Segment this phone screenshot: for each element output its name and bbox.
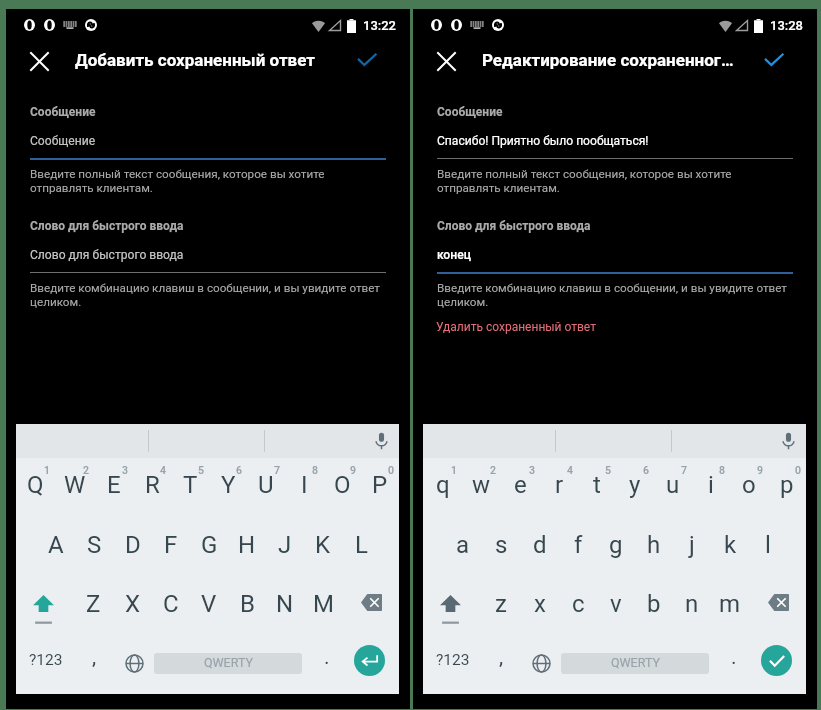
staticText: h — [647, 531, 661, 559]
button[interactable]: 8 — [692, 458, 730, 517]
button[interactable]: Enter — [753, 636, 799, 684]
button[interactable]: S — [75, 517, 114, 576]
button[interactable]: n — [673, 576, 711, 635]
button[interactable]: c — [559, 576, 597, 635]
button[interactable]: z — [481, 576, 520, 635]
button[interactable]: 0 — [768, 458, 806, 517]
button[interactable]: , — [74, 639, 114, 687]
button[interactable]: 6 — [209, 458, 247, 517]
button[interactable]: 8 — [285, 458, 323, 517]
staticText: Z — [86, 590, 101, 618]
staticText: 9 — [757, 464, 763, 476]
button[interactable]: 3 — [94, 458, 133, 517]
staticText: l — [765, 531, 771, 559]
button[interactable]: k — [711, 517, 749, 576]
button[interactable]: Close — [22, 44, 56, 78]
button[interactable]: f — [559, 517, 597, 576]
button[interactable]: Voice input — [773, 426, 803, 456]
button[interactable]: v — [597, 576, 635, 635]
button[interactable]: s — [482, 517, 521, 576]
staticText: w — [472, 471, 491, 499]
button[interactable]: Change language — [114, 639, 154, 687]
button[interactable]: 6 — [616, 458, 654, 517]
button[interactable]: . — [717, 639, 751, 687]
button[interactable]: 1 — [423, 458, 462, 517]
button[interactable]: x — [520, 576, 559, 635]
button[interactable]: ?123 — [425, 636, 481, 684]
button[interactable]: D — [114, 517, 152, 576]
button[interactable]: . — [310, 639, 344, 687]
button[interactable]: 9 — [730, 458, 768, 517]
staticText: Добавить сохраненный ответ — [75, 50, 350, 70]
button[interactable]: X — [113, 576, 152, 635]
button[interactable]: 7 — [654, 458, 692, 517]
button[interactable]: d — [521, 517, 559, 576]
button[interactable]: QWERTY — [146, 639, 310, 687]
staticText: X — [125, 590, 141, 618]
button[interactable]: 4 — [133, 458, 171, 517]
staticText: W — [64, 471, 86, 499]
button[interactable]: N — [266, 576, 304, 635]
button[interactable]: 0 — [361, 458, 399, 517]
button[interactable]: C — [152, 576, 190, 635]
button[interactable]: 7 — [247, 458, 285, 517]
button[interactable]: Shift — [16, 576, 74, 635]
staticText: 9 — [350, 464, 356, 476]
button[interactable]: ?123 — [18, 636, 74, 684]
button[interactable]: 5 — [578, 458, 616, 517]
button[interactable]: a — [443, 517, 482, 576]
button[interactable]: H — [228, 517, 266, 576]
button[interactable]: h — [635, 517, 673, 576]
button[interactable]: 3 — [501, 458, 540, 517]
button[interactable]: Удалить сохраненный ответ — [436, 320, 596, 334]
staticText: J — [278, 531, 292, 559]
button[interactable]: 2 — [462, 458, 501, 517]
staticText: F — [164, 531, 178, 559]
button[interactable]: J — [266, 517, 304, 576]
staticText: ?123 — [436, 651, 470, 669]
button[interactable]: Backspace — [342, 576, 399, 635]
button[interactable]: Z — [74, 576, 113, 635]
button[interactable]: A — [36, 517, 75, 576]
button[interactable]: 9 — [323, 458, 361, 517]
button[interactable]: l — [749, 517, 787, 576]
staticText: S — [87, 531, 102, 559]
button[interactable]: , — [481, 639, 521, 687]
button[interactable]: B — [228, 576, 266, 635]
button[interactable]: M — [304, 576, 342, 635]
button[interactable]: g — [597, 517, 635, 576]
button[interactable]: b — [635, 576, 673, 635]
staticText: 13:22 — [363, 18, 397, 33]
button[interactable]: Voice input — [366, 426, 396, 456]
staticText: q — [436, 471, 450, 499]
staticText: N — [276, 590, 294, 618]
staticText: M — [313, 590, 334, 618]
button[interactable]: K — [304, 517, 342, 576]
staticText: 0 — [795, 464, 801, 476]
button[interactable]: V — [190, 576, 228, 635]
button[interactable]: Backspace — [749, 576, 806, 635]
button[interactable]: j — [673, 517, 711, 576]
staticText: m — [719, 590, 741, 618]
button[interactable]: Change language — [521, 639, 561, 687]
button[interactable]: Save — [349, 41, 385, 77]
button[interactable]: 4 — [540, 458, 578, 517]
button[interactable]: F — [152, 517, 190, 576]
staticText: 1 — [44, 464, 50, 476]
button[interactable]: L — [342, 517, 380, 576]
button[interactable]: 1 — [16, 458, 55, 517]
button[interactable]: m — [711, 576, 749, 635]
staticText: V — [201, 590, 217, 618]
button[interactable]: Close — [429, 44, 463, 78]
button[interactable]: Save — [756, 41, 792, 77]
staticText: i — [708, 471, 714, 499]
staticText: O — [334, 471, 351, 499]
button[interactable]: 5 — [171, 458, 209, 517]
button[interactable]: Shift — [423, 576, 481, 635]
button[interactable]: QWERTY — [553, 639, 717, 687]
button[interactable]: Enter — [346, 636, 392, 684]
button[interactable]: 2 — [55, 458, 94, 517]
button[interactable]: G — [190, 517, 228, 576]
staticText: 7 — [274, 464, 280, 476]
staticText: I — [301, 471, 308, 499]
